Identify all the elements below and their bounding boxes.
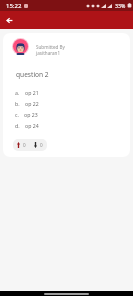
button[interactable]: Downvote xyxy=(30,139,47,151)
staticText: c. xyxy=(15,111,19,118)
staticText: d. xyxy=(15,122,20,129)
staticText: 0 xyxy=(40,142,43,148)
staticText: op 21 xyxy=(25,89,39,96)
staticText: question 2 xyxy=(16,70,49,79)
button[interactable]: Back xyxy=(1,12,17,28)
staticText: b. xyxy=(15,100,20,107)
staticText: jasitharan1 xyxy=(36,50,61,56)
staticText: 0 xyxy=(23,142,26,148)
staticText: op 23 xyxy=(24,111,38,118)
button[interactable]: b. xyxy=(3,98,130,109)
staticText: op 24 xyxy=(25,122,39,129)
button[interactable]: Upvote xyxy=(13,139,30,151)
staticText: a. xyxy=(15,89,20,96)
button[interactable]: c. xyxy=(3,109,130,120)
staticText: 33% xyxy=(115,2,126,9)
staticText: op 22 xyxy=(25,100,39,107)
button[interactable]: d. xyxy=(3,120,130,131)
button[interactable]: a. xyxy=(3,87,130,98)
staticText: Submitted By xyxy=(36,44,65,50)
staticText: 15:22 xyxy=(6,2,22,10)
